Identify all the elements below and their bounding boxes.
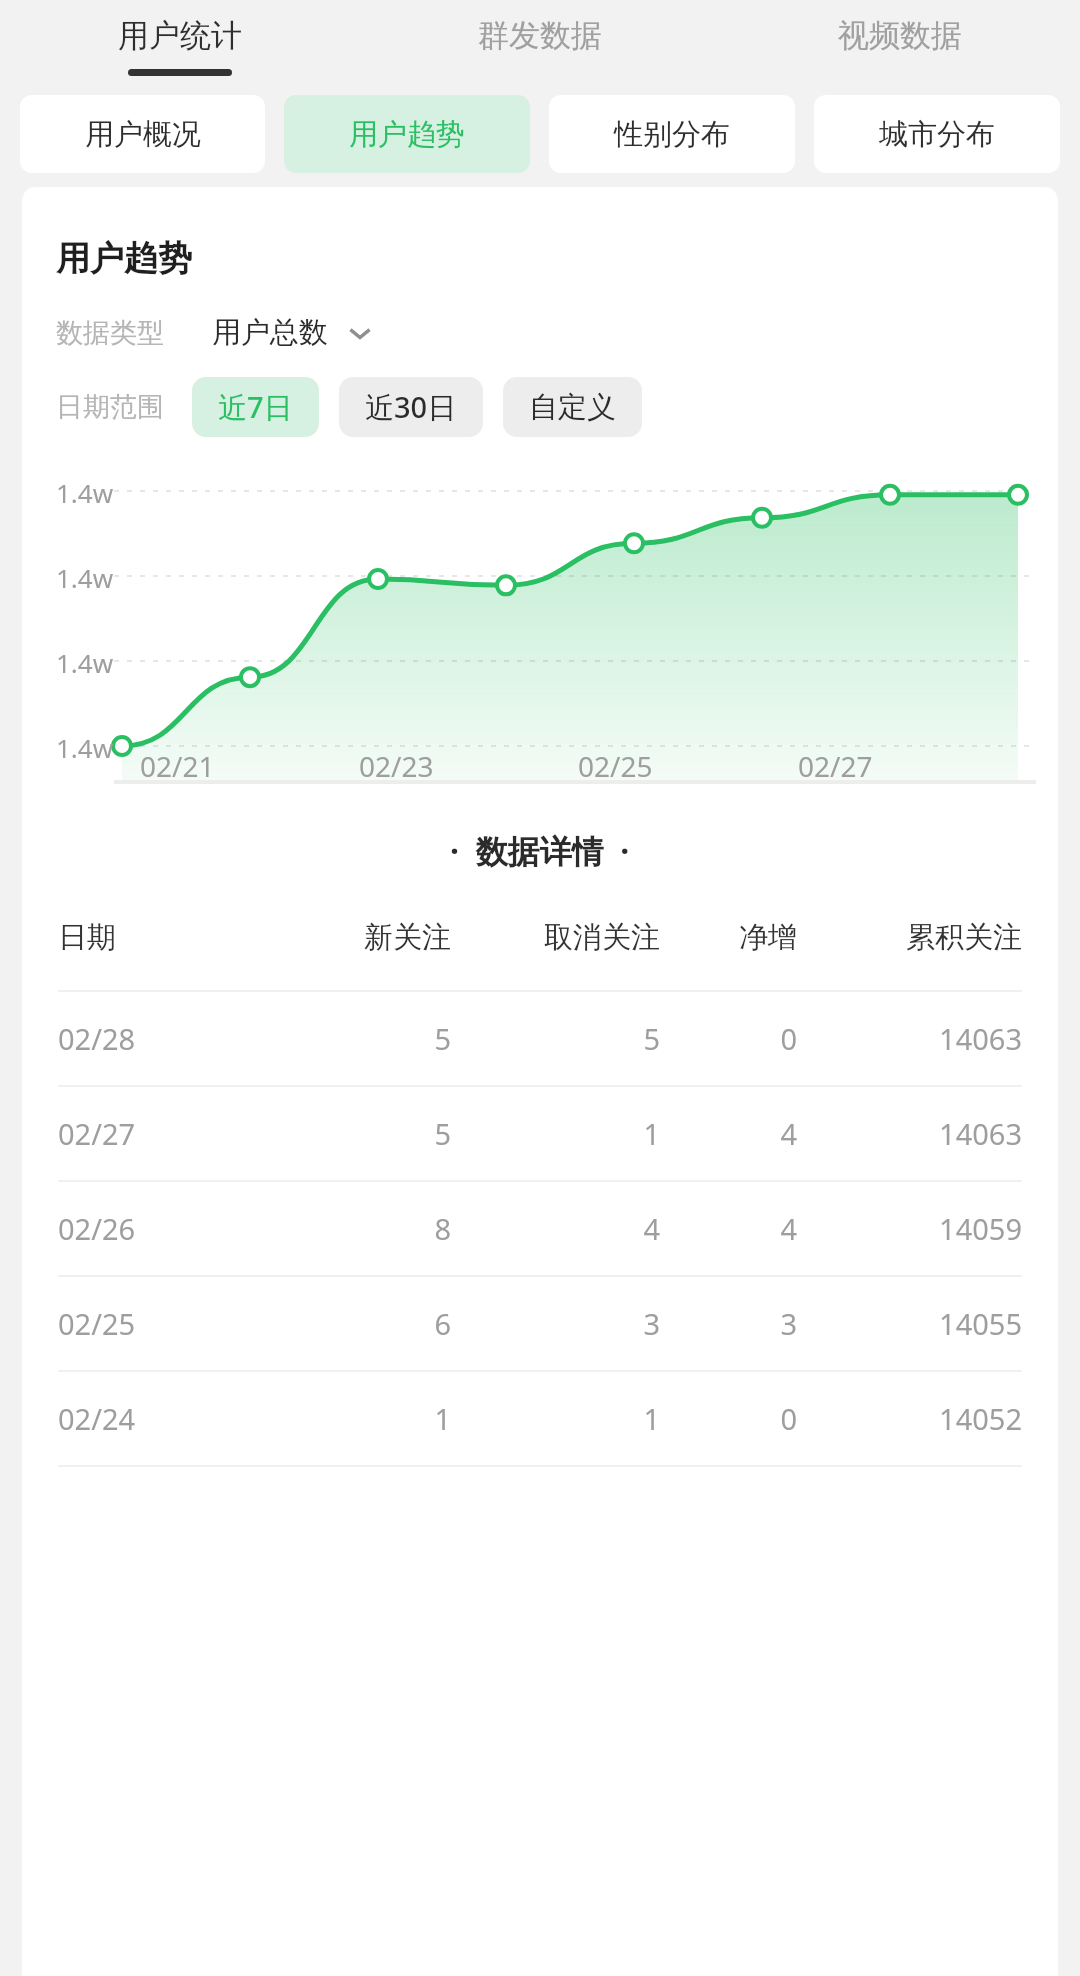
other: 展开数据类型选择 xyxy=(346,319,374,347)
button[interactable]: 视频数据 xyxy=(720,0,1080,95)
staticText: 4 xyxy=(660,1209,797,1248)
staticText: 02/24 xyxy=(58,1399,266,1438)
staticText: 1.4w xyxy=(56,645,114,680)
staticText: 自定义 xyxy=(529,389,616,426)
button[interactable]: 近7日 xyxy=(192,377,319,437)
staticText: 1.4w xyxy=(56,730,114,765)
staticText: 取消关注 xyxy=(451,919,660,956)
staticText: 1 xyxy=(451,1114,660,1153)
staticText: 02/28 xyxy=(58,1019,266,1058)
button[interactable]: 近30日 xyxy=(339,377,483,437)
staticText: 02/27 xyxy=(58,1114,266,1153)
staticText: 02/21 xyxy=(140,747,215,785)
staticText: 14055 xyxy=(797,1304,1022,1343)
staticText: 用户统计 xyxy=(118,16,242,55)
staticText: 数据类型 xyxy=(56,316,164,350)
staticText: 累积关注 xyxy=(797,919,1022,956)
staticText: 14052 xyxy=(797,1399,1022,1438)
staticText: 0 xyxy=(660,1399,797,1438)
staticText: 城市分布 xyxy=(879,116,995,153)
staticText: 5 xyxy=(266,1114,451,1153)
staticText: 6 xyxy=(266,1304,451,1343)
button[interactable]: 用户总数 xyxy=(212,314,374,351)
button[interactable]: 自定义 xyxy=(503,377,642,437)
staticText: 1 xyxy=(266,1399,451,1438)
staticText: 日期范围 xyxy=(56,390,164,424)
staticText: 性别分布 xyxy=(614,116,730,153)
staticText: 02/25 xyxy=(58,1304,266,1343)
staticText: 近7日 xyxy=(218,387,293,427)
button[interactable]: 用户概况 xyxy=(20,95,265,173)
staticText: 02/26 xyxy=(58,1209,266,1248)
staticText: 群发数据 xyxy=(478,16,602,55)
staticText: 4 xyxy=(660,1114,797,1153)
staticText: 新关注 xyxy=(266,919,451,956)
staticText: 用户总数 xyxy=(212,314,328,351)
staticText: 用户趋势 xyxy=(56,237,192,280)
staticText: 02/23 xyxy=(359,747,434,785)
staticText: 14059 xyxy=(797,1209,1022,1248)
staticText: 3 xyxy=(660,1304,797,1343)
button[interactable]: 02/28 xyxy=(58,992,1022,1085)
staticText: 4 xyxy=(451,1209,660,1248)
staticText: 5 xyxy=(266,1019,451,1058)
staticText: 视频数据 xyxy=(838,16,962,55)
button[interactable]: 用户统计 xyxy=(0,0,360,95)
button[interactable]: 02/26 xyxy=(58,1182,1022,1275)
staticText: 3 xyxy=(451,1304,660,1343)
button[interactable]: 02/24 xyxy=(58,1372,1022,1465)
staticText: 用户趋势 xyxy=(349,116,465,153)
staticText: 净增 xyxy=(660,919,797,956)
staticText: 14063 xyxy=(797,1019,1022,1058)
staticText: 1.4w xyxy=(56,560,114,595)
staticText: 1.4w xyxy=(56,475,114,510)
staticText: 5 xyxy=(451,1019,660,1058)
staticText: 用户概况 xyxy=(85,116,201,153)
button[interactable]: 城市分布 xyxy=(814,95,1060,173)
staticText: 02/27 xyxy=(798,747,873,785)
button[interactable]: 用户趋势 xyxy=(284,95,530,173)
staticText: · 数据详情 · xyxy=(450,829,630,873)
staticText: 02/25 xyxy=(578,747,653,785)
button[interactable]: 02/27 xyxy=(58,1087,1022,1180)
staticText: 1 xyxy=(451,1399,660,1438)
button[interactable]: 02/25 xyxy=(58,1277,1022,1370)
staticText: 日期 xyxy=(58,919,266,956)
staticText: 14063 xyxy=(797,1114,1022,1153)
staticText: 近30日 xyxy=(365,387,457,427)
button[interactable]: 性别分布 xyxy=(549,95,795,173)
button[interactable]: 群发数据 xyxy=(360,0,720,95)
staticText: 0 xyxy=(660,1019,797,1058)
staticText: 8 xyxy=(266,1209,451,1248)
